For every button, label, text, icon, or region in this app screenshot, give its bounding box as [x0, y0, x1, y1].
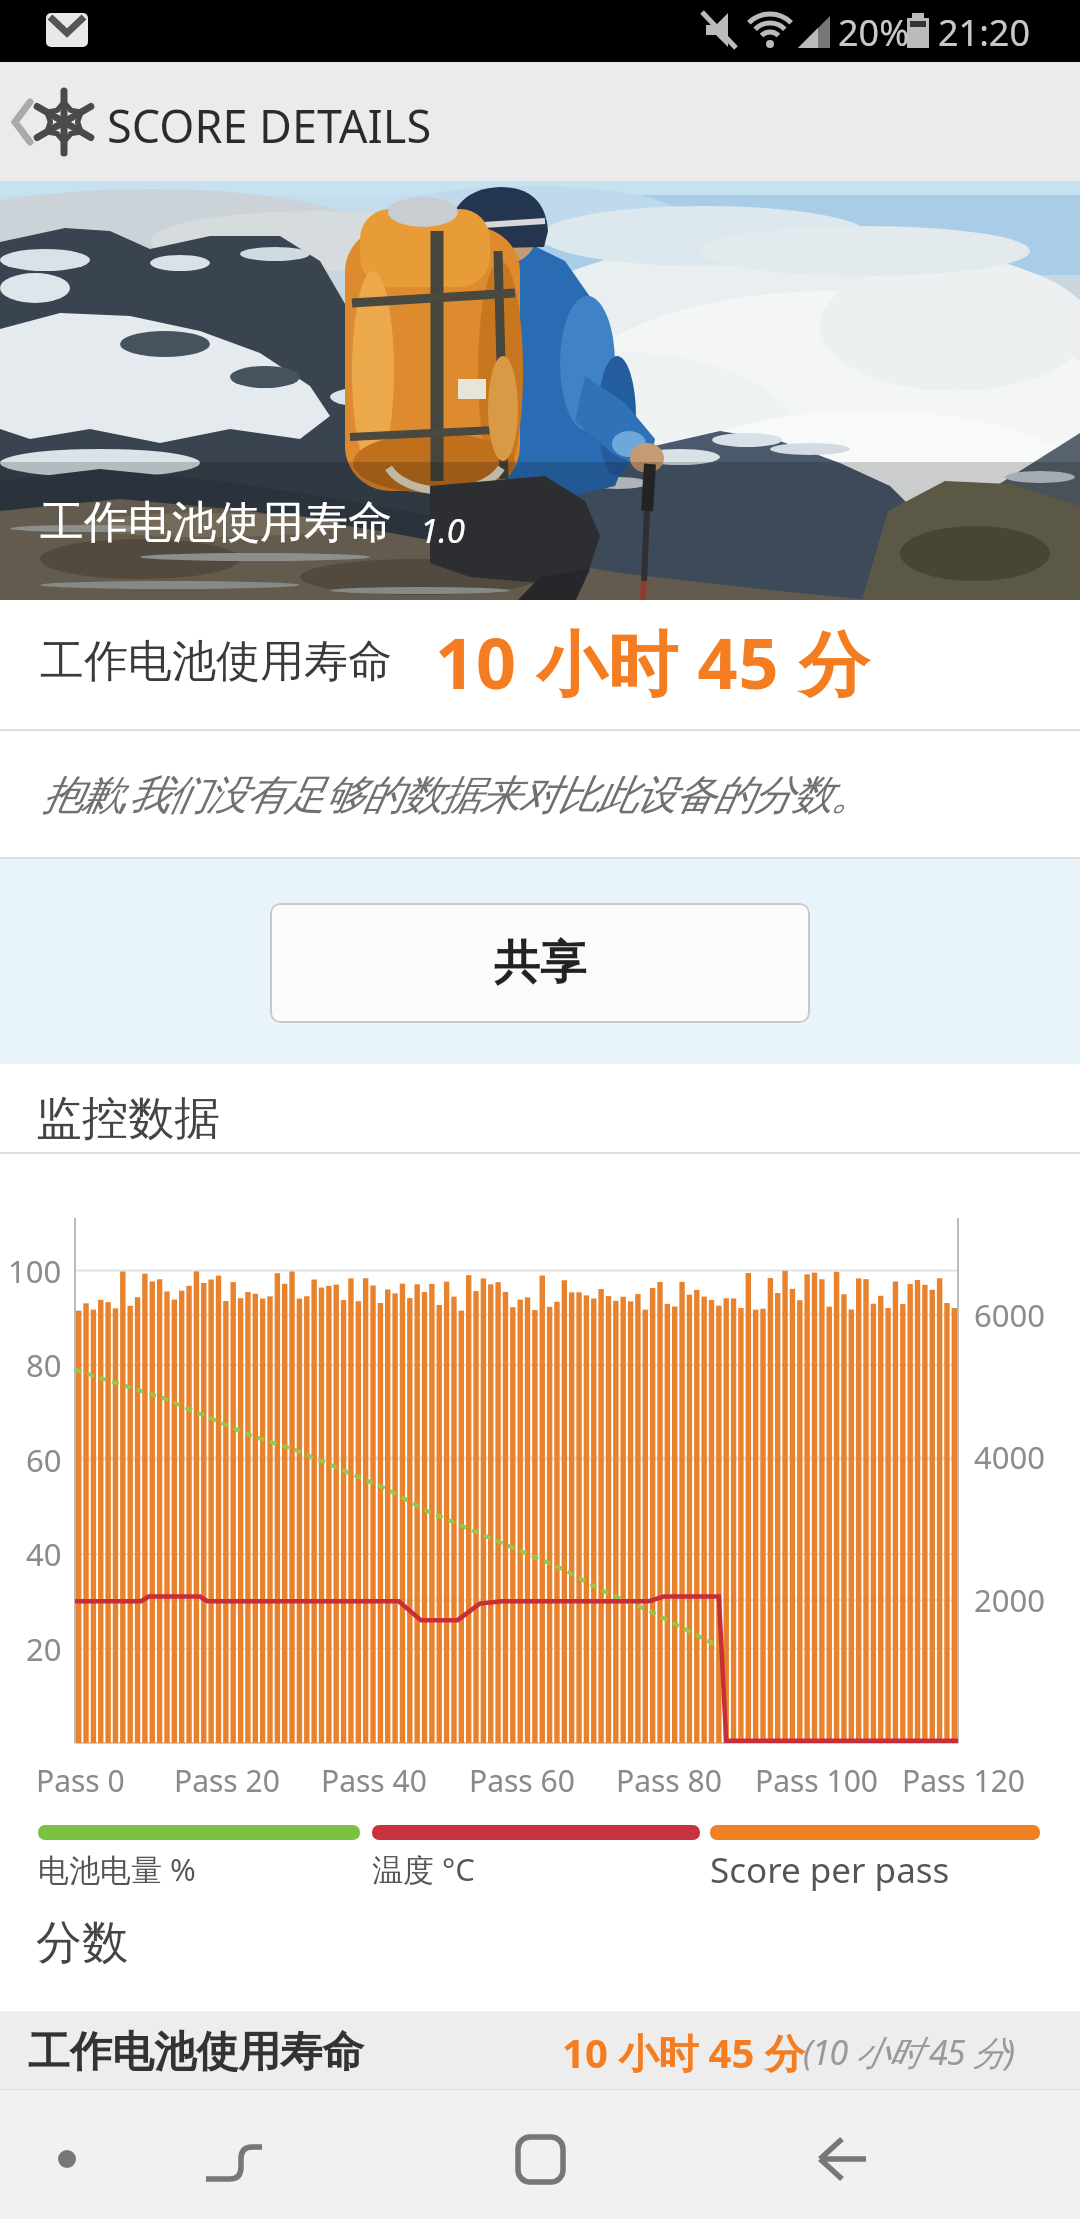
- button[interactable]: [540, 2089, 810, 2219]
- staticText: 10 小时 45 分: [562, 2025, 805, 2080]
- button[interactable]: [0, 62, 100, 181]
- staticText: 20%: [838, 8, 910, 57]
- staticText: 分数: [36, 1914, 128, 1972]
- button[interactable]: [270, 2089, 540, 2219]
- staticText: Pass 80: [616, 1760, 722, 1801]
- staticText: 80: [26, 1344, 62, 1386]
- button[interactable]: 共享: [270, 903, 810, 1023]
- staticText: SCORE DETAILS: [107, 95, 432, 156]
- staticText: 4000: [974, 1436, 1045, 1478]
- button[interactable]: [810, 2089, 1080, 2219]
- staticText: 监控数据: [36, 1090, 220, 1148]
- staticText: 电池电量 %: [38, 1848, 196, 1890]
- staticText: 1.0: [420, 508, 465, 553]
- staticText: Pass 40: [321, 1760, 427, 1801]
- staticText: 20: [26, 1628, 62, 1670]
- staticText: 工作电池使用寿命: [40, 495, 392, 550]
- staticText: Pass 20: [174, 1760, 280, 1801]
- staticText: 抱歉,我们没有足够的数据来对比此设备的分数。: [42, 765, 870, 821]
- staticText: 6000: [974, 1294, 1045, 1336]
- staticText: 60: [26, 1439, 62, 1481]
- staticText: Pass 60: [469, 1760, 575, 1801]
- staticText: 2000: [974, 1579, 1045, 1621]
- staticText: 温度 °C: [372, 1848, 475, 1890]
- staticText: Pass 120: [902, 1760, 1025, 1801]
- staticText: 21:20: [938, 8, 1031, 57]
- staticText: 共享: [494, 934, 586, 992]
- staticText: (10 小时 45 分): [803, 2029, 1015, 2075]
- button[interactable]: [0, 2089, 270, 2219]
- staticText: Pass 100: [755, 1760, 878, 1801]
- staticText: 10 小时 45 分: [435, 614, 870, 710]
- staticText: 工作电池使用寿命: [28, 2026, 364, 2079]
- staticText: Score per pass: [710, 1846, 950, 1894]
- staticText: 100: [8, 1250, 62, 1292]
- staticText: Pass 0: [36, 1760, 125, 1801]
- staticText: 工作电池使用寿命: [40, 634, 392, 689]
- staticText: 40: [26, 1533, 62, 1575]
